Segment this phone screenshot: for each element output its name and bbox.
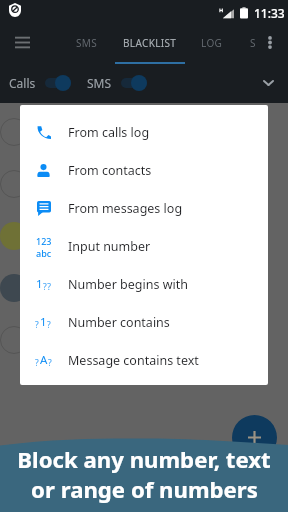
- button[interactable]: 1: [20, 265, 268, 303]
- staticText: 1: [40, 314, 47, 330]
- staticText: Calls: [9, 75, 36, 91]
- button[interactable]: Add: [232, 415, 277, 460]
- button[interactable]: Expand filters: [253, 68, 283, 98]
- button[interactable]: ?: [20, 341, 268, 379]
- staticText: SMS: [87, 75, 112, 91]
- staticText: Block any number, text: [17, 444, 271, 474]
- staticText: BLACKLIST: [123, 36, 177, 50]
- button[interactable]: Calls: [9, 75, 71, 91]
- button[interactable]: BLACKLIST: [120, 25, 180, 61]
- staticText: Message contains text: [68, 352, 199, 369]
- button[interactable]: More options: [258, 30, 282, 54]
- staticText: ?: [48, 357, 53, 369]
- button[interactable]: From calls log: [20, 113, 268, 151]
- staticText: ??: [43, 281, 52, 293]
- staticText: Number contains: [68, 314, 170, 331]
- staticText: 11:33: [254, 5, 285, 21]
- staticText: ?: [35, 357, 40, 369]
- staticText: Input number: [68, 238, 151, 255]
- staticText: S: [250, 36, 256, 50]
- staticText: abc: [36, 247, 52, 257]
- staticText: 1: [36, 276, 43, 292]
- button[interactable]: SMS: [57, 25, 117, 61]
- staticText: From messages log: [68, 200, 183, 217]
- button[interactable]: LOG: [182, 25, 242, 61]
- staticText: Number begins with: [68, 276, 188, 293]
- button[interactable]: 123: [20, 227, 268, 265]
- button[interactable]: ?: [20, 303, 268, 341]
- staticText: SMS: [76, 36, 98, 50]
- staticText: From calls log: [68, 124, 150, 141]
- staticText: ?: [35, 319, 40, 331]
- button[interactable]: From contacts: [20, 151, 268, 189]
- button[interactable]: From messages log: [20, 189, 268, 227]
- staticText: LOG: [201, 36, 223, 50]
- button[interactable]: Navigation menu: [7, 27, 38, 58]
- staticText: 123: [36, 235, 52, 247]
- button[interactable]: SMS: [87, 75, 147, 91]
- staticText: or range of numbers: [31, 474, 258, 504]
- button[interactable]: S: [223, 25, 283, 61]
- staticText: From contacts: [68, 162, 152, 179]
- staticText: A: [40, 352, 48, 368]
- staticText: ?: [47, 319, 52, 331]
